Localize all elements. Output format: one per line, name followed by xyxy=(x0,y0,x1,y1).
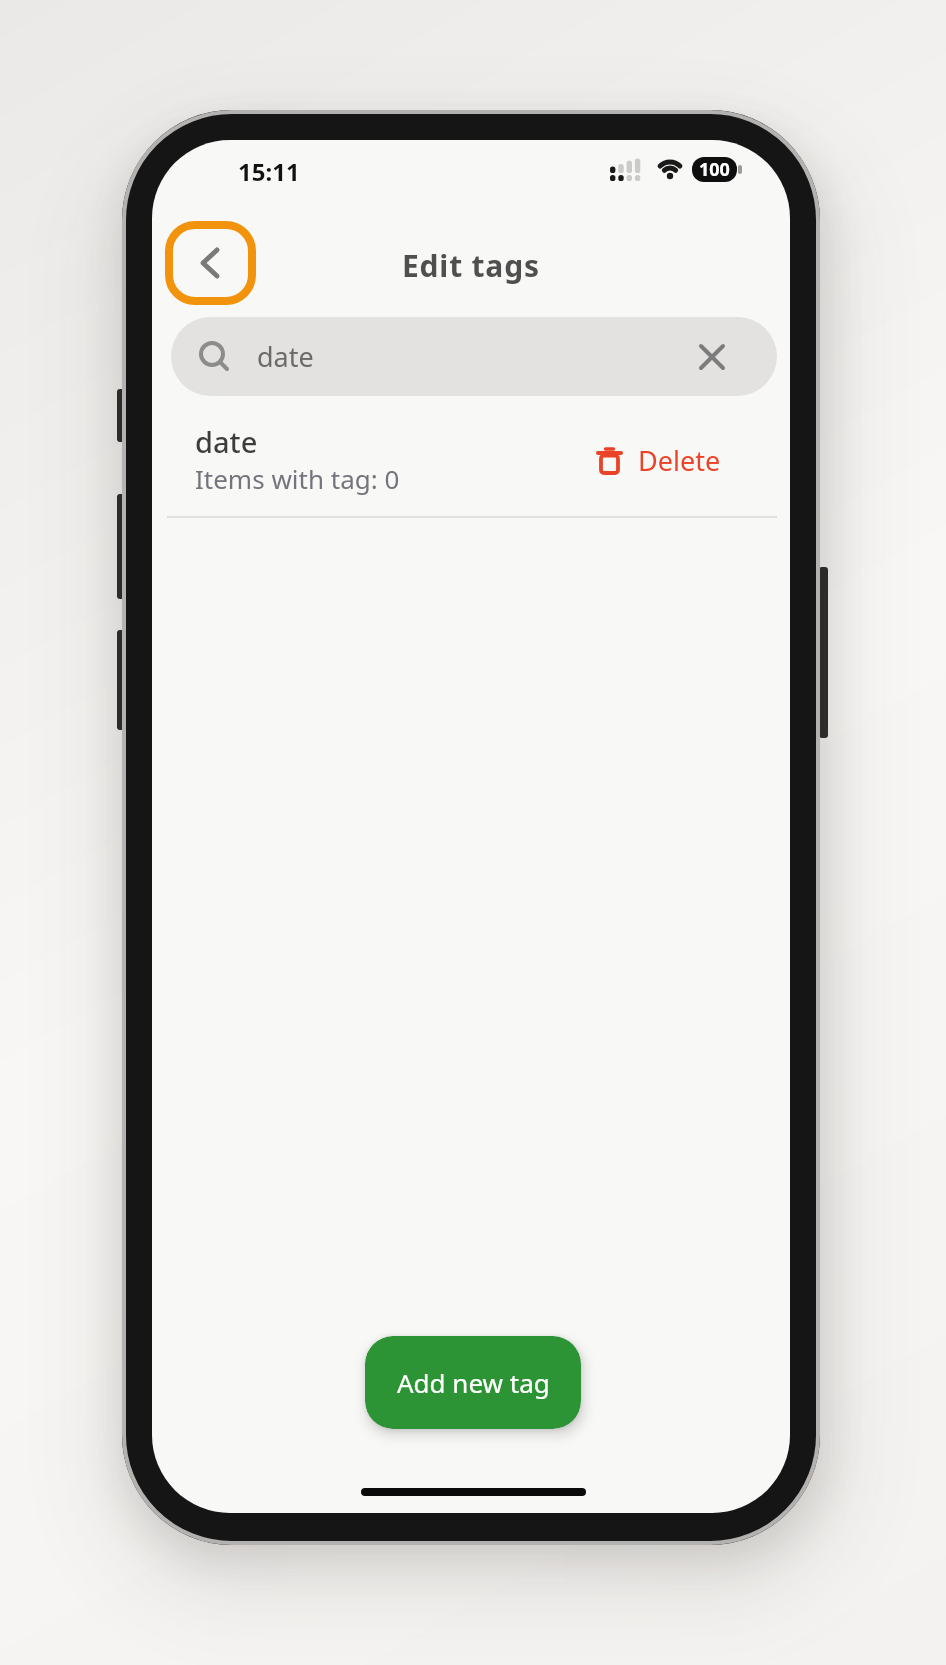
staticText: date xyxy=(257,338,314,375)
button[interactable] xyxy=(698,343,726,371)
staticText: date xyxy=(195,422,258,461)
staticText: 100 xyxy=(699,157,730,182)
staticText: Delete xyxy=(638,442,721,479)
button[interactable]: date xyxy=(167,420,777,517)
staticText: Add new tag xyxy=(397,1365,550,1400)
staticText: Edit tags xyxy=(402,245,540,286)
button[interactable] xyxy=(165,221,256,305)
button[interactable]: Delete xyxy=(597,442,721,479)
button[interactable]: date xyxy=(171,317,777,396)
staticText: Items with tag: 0 xyxy=(195,461,400,496)
button[interactable]: Add new tag xyxy=(365,1336,581,1429)
staticText: 15:11 xyxy=(238,155,300,188)
